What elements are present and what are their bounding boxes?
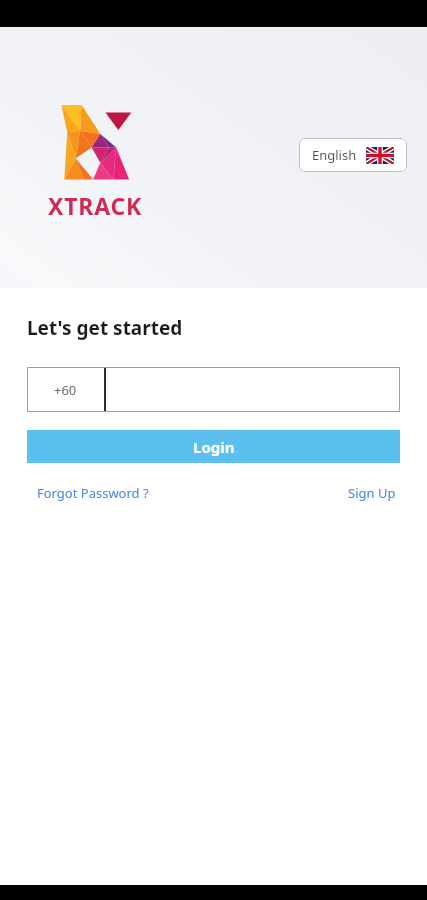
staticText: XTRACK	[48, 190, 143, 221]
staticText: Let's get started	[27, 315, 183, 341]
button[interactable]: Sign Up	[344, 481, 400, 505]
button[interactable]: English	[299, 138, 407, 172]
button[interactable]: Login	[27, 430, 400, 463]
staticText: English	[312, 146, 357, 164]
button[interactable]: Forgot Password ?	[27, 481, 159, 505]
staticText: +60	[54, 381, 77, 399]
staticText: Sign Up	[348, 484, 396, 502]
button[interactable]: +60	[27, 367, 400, 412]
staticText: Forgot Password ?	[37, 484, 149, 502]
staticText: Login	[193, 437, 235, 457]
